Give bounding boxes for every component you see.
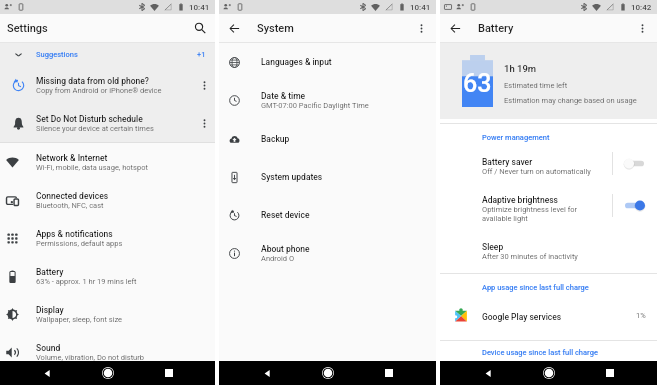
button[interactable]: Display xyxy=(0,295,215,333)
button[interactable]: Home xyxy=(538,362,560,384)
staticText: Optimize brightness level for available … xyxy=(482,205,578,223)
button[interactable]: Battery xyxy=(0,257,215,295)
button[interactable]: More options xyxy=(627,14,657,42)
staticText: Battery xyxy=(478,22,514,35)
staticText: Settings xyxy=(7,22,48,35)
staticText: Estimation may change based on usage xyxy=(504,96,637,105)
staticText: Bluetooth, NFC, cast xyxy=(36,201,104,210)
staticText: 63% - approx. 1 hr 19 mins left xyxy=(36,277,137,286)
staticText: After 30 minutes of inactivity xyxy=(482,252,578,261)
staticText: Display xyxy=(36,305,64,315)
staticText: GMT-07:00 Pacific Daylight Time xyxy=(261,101,369,110)
staticText: Date & time xyxy=(261,91,306,101)
staticText: 10:41 xyxy=(189,3,210,12)
button[interactable]: Sound xyxy=(0,333,215,371)
staticText: Sound xyxy=(36,343,61,353)
button[interactable]: Search xyxy=(185,14,215,42)
staticText: Device usage since last full charge xyxy=(482,348,598,357)
staticText: App usage since last full charge xyxy=(482,283,589,292)
staticText: Suggestions xyxy=(36,50,78,59)
staticText: 1% xyxy=(636,311,646,320)
staticText: Silence your device at certain times xyxy=(36,124,154,133)
button[interactable]: Date & time xyxy=(219,81,436,120)
button[interactable]: Suggestions xyxy=(0,43,215,66)
staticText: 10:42 xyxy=(631,3,652,12)
staticText: Off / Never turn on automatically xyxy=(482,167,591,176)
staticText: Missing data from old phone? xyxy=(36,76,149,86)
button[interactable]: More options xyxy=(406,14,436,42)
button[interactable]: Adaptive brightness xyxy=(440,186,657,224)
button[interactable]: Connected devices xyxy=(0,181,215,219)
staticText: Android O xyxy=(261,254,295,263)
staticText: Sleep xyxy=(482,242,504,252)
button[interactable]: Turn on Battery saver xyxy=(615,148,653,178)
staticText: System xyxy=(257,22,294,35)
button[interactable]: Network & Internet xyxy=(0,143,215,181)
staticText: Backup xyxy=(261,134,290,144)
button[interactable]: Back xyxy=(477,362,499,384)
button[interactable]: More options xyxy=(193,66,215,104)
staticText: Adaptive brightness xyxy=(482,195,558,205)
button[interactable]: More options xyxy=(193,104,215,142)
button[interactable]: Recents xyxy=(378,362,400,384)
staticText: Connected devices xyxy=(36,191,109,201)
staticText: Estimated time left xyxy=(504,81,568,90)
staticText: Set Do Not Disturb schedule xyxy=(36,114,143,124)
staticText: Permissions, default apps xyxy=(36,239,123,248)
button[interactable]: Battery saver xyxy=(440,148,657,178)
button[interactable]: Sleep xyxy=(440,233,657,265)
staticText: Wi-Fi, mobile, data usage, hotspot xyxy=(36,163,148,172)
button[interactable]: Back xyxy=(36,362,58,384)
button[interactable]: Turn off Adaptive brightness xyxy=(615,186,653,224)
button[interactable]: Home xyxy=(97,362,119,384)
button[interactable]: Missing data from old phone? xyxy=(0,66,215,104)
button[interactable]: System updates xyxy=(219,158,436,196)
button[interactable]: Back xyxy=(440,14,470,42)
button[interactable]: Set Do Not Disturb schedule xyxy=(0,104,215,142)
button[interactable]: Recents xyxy=(599,362,621,384)
staticText: 63 xyxy=(463,69,492,98)
staticText: Battery saver xyxy=(482,157,533,167)
staticText: About phone xyxy=(261,244,310,254)
staticText: Battery xyxy=(36,267,64,277)
staticText: System updates xyxy=(261,172,323,182)
button[interactable]: Google Play services xyxy=(440,304,657,326)
button[interactable]: Languages & input xyxy=(219,43,436,81)
staticText: Wallpaper, sleep, font size xyxy=(36,315,123,324)
staticText: Copy from Android or iPhone® device xyxy=(36,86,162,95)
staticText: +1 xyxy=(197,50,206,59)
button[interactable]: Backup xyxy=(219,120,436,158)
staticText: 10:41 xyxy=(410,3,431,12)
staticText: Network & Internet xyxy=(36,153,108,163)
staticText: Power management xyxy=(482,133,550,142)
staticText: Reset device xyxy=(261,210,310,220)
staticText: Google Play services xyxy=(482,312,562,322)
button[interactable]: Apps & notifications xyxy=(0,219,215,257)
button[interactable]: Home xyxy=(317,362,339,384)
button[interactable]: Reset device xyxy=(219,196,436,234)
button[interactable]: Back xyxy=(256,362,278,384)
button[interactable]: Back xyxy=(219,14,249,42)
button[interactable]: Recents xyxy=(158,362,180,384)
staticText: Volume, vibration, Do not disturb xyxy=(36,353,144,362)
staticText: Apps & notifications xyxy=(36,229,113,239)
staticText: 1h 19m xyxy=(504,63,537,74)
staticText: Languages & input xyxy=(261,57,332,67)
button[interactable]: About phone xyxy=(219,234,436,273)
